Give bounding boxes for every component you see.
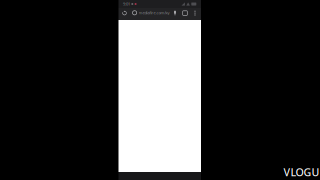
button[interactable]: More options [191, 7, 199, 19]
button[interactable]: Reload [119, 7, 130, 19]
button[interactable]: Voice search [170, 7, 179, 19]
staticText: 9:01 [123, 1, 130, 7]
staticText: VLOGU [283, 165, 319, 179]
staticText: mediafire.com/xy [138, 10, 169, 15]
button[interactable]: Switch tabs [180, 7, 189, 19]
button[interactable]: mediafire.com/xy [132, 8, 169, 20]
